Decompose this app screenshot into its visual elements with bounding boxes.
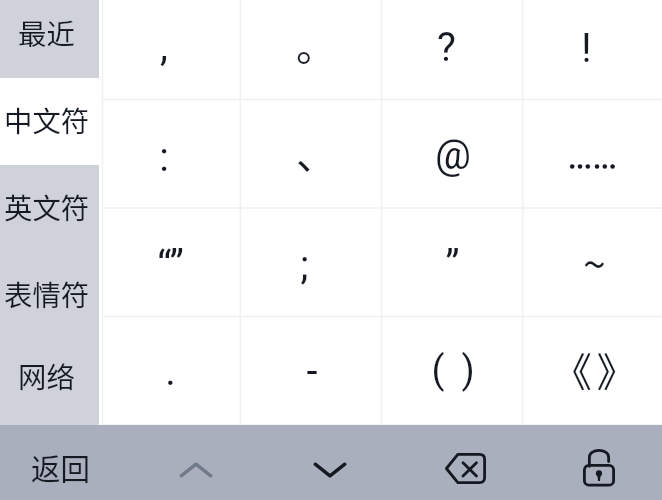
staticText: , [160, 23, 168, 70]
button[interactable]: Lock keyboard [549, 430, 649, 500]
staticText: 《》 [552, 341, 641, 399]
staticText: 最近 [18, 12, 75, 53]
staticText: () [431, 348, 492, 393]
button[interactable]: 《》 [522, 318, 662, 416]
button[interactable]: 返回 [0, 425, 120, 500]
button[interactable]: Backspace [415, 431, 515, 500]
staticText: 返回 [31, 446, 91, 489]
staticText: ? [437, 24, 456, 71]
staticText: - [306, 348, 318, 395]
button[interactable]: 。 [240, 0, 381, 100]
staticText: 、 [296, 123, 336, 181]
staticText: 英文符 [4, 186, 90, 227]
button[interactable]: 、 [240, 100, 381, 209]
button[interactable]: 最近 [0, 0, 99, 78]
button[interactable]: Ellipsis symbol [522, 100, 662, 209]
staticText: 表情符 [4, 273, 90, 314]
button[interactable]: ; [240, 209, 381, 318]
button[interactable]: . [99, 318, 240, 416]
staticText: 。 [296, 15, 336, 73]
button[interactable]: 英文符 [0, 165, 99, 252]
staticText: : [159, 134, 169, 181]
staticText: @ [435, 132, 471, 179]
staticText: ~ [583, 232, 606, 291]
button[interactable]: () [381, 318, 522, 416]
button[interactable]: Previous page [146, 432, 246, 500]
button[interactable]: , [99, 0, 240, 100]
staticText: ; [300, 242, 309, 289]
button[interactable]: ” [381, 209, 522, 318]
button[interactable]: ! [522, 0, 662, 100]
staticText: 中文符 [4, 99, 90, 140]
button[interactable]: Next page [280, 432, 380, 500]
button[interactable]: 中文符 [0, 78, 99, 165]
button[interactable]: ? [381, 0, 522, 100]
button[interactable]: “” [99, 209, 240, 318]
button[interactable]: : [99, 100, 240, 209]
staticText: “” [157, 242, 184, 289]
button[interactable]: 表情符 [0, 252, 99, 339]
staticText: . [165, 348, 176, 395]
staticText: ! [581, 25, 592, 72]
staticText: ” [445, 242, 460, 289]
button[interactable]: 网络 [0, 339, 99, 416]
button[interactable]: - [240, 318, 381, 416]
button[interactable]: ~ [522, 209, 662, 318]
button[interactable]: @ [381, 100, 522, 209]
staticText: 网络 [18, 355, 75, 396]
